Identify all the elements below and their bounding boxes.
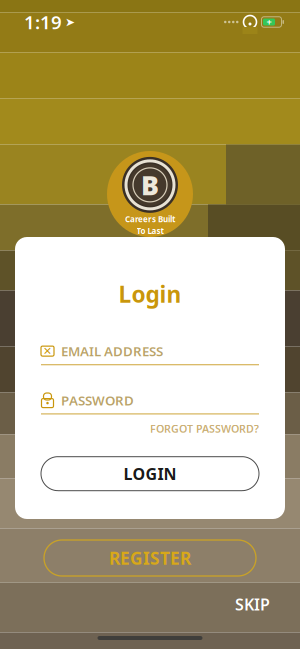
button[interactable]: SKIP [227,589,278,620]
staticText: LOGIN [123,463,176,484]
staticText: + [266,16,271,28]
staticText: Login [118,279,181,309]
button[interactable]: FORGOT PASSWORD? [150,421,259,436]
staticText: Careers Built [125,214,175,224]
staticText: PASSWORD [61,391,134,409]
staticText: EMAIL ADDRESS [61,342,163,360]
button[interactable]: REGISTER [44,540,256,576]
staticText: REGISTER [109,546,191,569]
staticText: SKIP [235,594,270,615]
staticText: To Last [136,225,163,236]
button[interactable]: LOGIN [41,457,259,491]
staticText: FORGOT PASSWORD? [150,421,259,436]
staticText: ➤ [65,15,75,29]
staticText: 1:19 [24,10,62,34]
staticText: ✕ [43,345,52,357]
staticText: B [141,167,159,203]
